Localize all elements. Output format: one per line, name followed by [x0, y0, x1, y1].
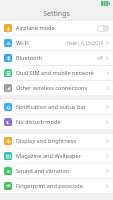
staticText: Magazine and Wallpaper — [16, 152, 105, 160]
staticText: Bluetooth — [16, 54, 97, 62]
button[interactable]: Airplane mode toggle — [97, 25, 109, 32]
staticText: Helen_A_Lbs2019 — [67, 40, 103, 46]
staticText: Display and brightness — [16, 137, 105, 145]
staticText: Sound and vibration — [16, 167, 105, 175]
button[interactable]: Wi-Fi — [0, 36, 113, 50]
staticText: Other wireless connections — [16, 84, 105, 92]
staticText: Airplane mode — [16, 24, 97, 32]
button[interactable]: No disturb mode — [0, 115, 113, 129]
staticText: Notification and status bar — [16, 103, 105, 111]
button[interactable]: Sound and vibration — [0, 164, 113, 178]
staticText: Fingerprint and passcode — [16, 182, 105, 190]
staticText: off — [97, 55, 103, 61]
button[interactable]: Fingerprint and passcode — [0, 179, 113, 193]
button[interactable]: Other wireless connections — [0, 81, 113, 95]
button[interactable]: Display and brightness — [0, 134, 113, 148]
staticText: Settings — [43, 9, 70, 19]
staticText: Wi-Fi — [16, 39, 67, 47]
staticText: Dual SIM and mobile network — [16, 69, 105, 77]
staticText: No disturb mode — [16, 118, 105, 126]
button[interactable]: Magazine and Wallpaper — [0, 149, 113, 163]
button[interactable]: Notification and status bar — [0, 100, 113, 114]
button[interactable]: Bluetooth — [0, 51, 113, 65]
button[interactable]: Dual SIM and mobile network — [0, 66, 113, 80]
button[interactable]: Airplane mode — [0, 21, 113, 35]
